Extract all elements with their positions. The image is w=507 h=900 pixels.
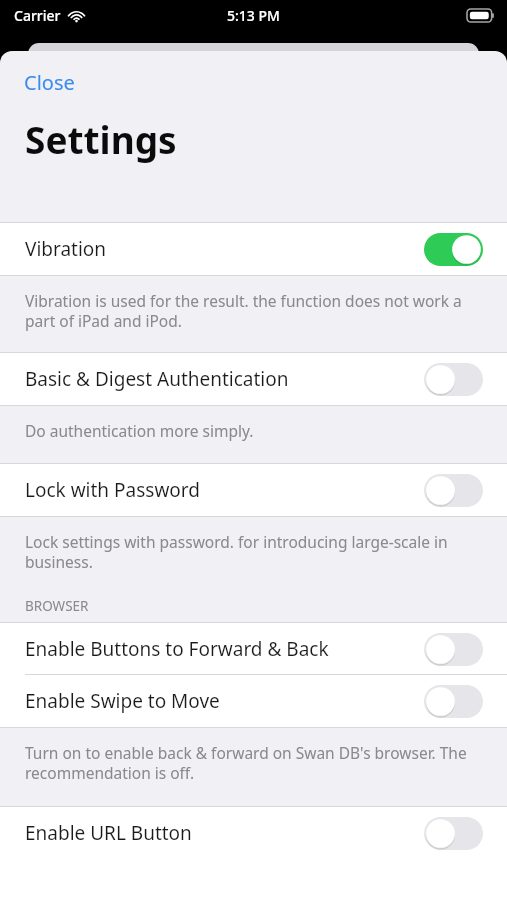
button[interactable]: Toggle off [424,817,483,850]
staticText: Settings [25,114,177,164]
staticText: Enable URL Button [25,820,192,846]
button[interactable]: Basic & Digest Authentication [0,353,507,405]
staticText: Turn on to enable back & forward on Swan… [25,742,479,784]
staticText: Lock settings with password. for introdu… [25,531,479,573]
button[interactable]: Toggle off [424,474,483,507]
staticText: Do authentication more simply. [25,420,254,441]
staticText: 5:13 PM [227,6,280,25]
button[interactable]: Enable URL Button [0,807,507,859]
button[interactable]: Close [12,63,87,102]
button[interactable]: Toggle off [424,685,483,718]
button[interactable]: Toggle off [424,633,483,666]
staticText: Vibration is used for the result. the fu… [25,290,479,332]
button[interactable]: Lock with Password [0,464,507,516]
button[interactable]: Vibration [0,223,507,275]
staticText: Vibration [25,236,107,262]
button[interactable]: Toggle off [424,363,483,396]
staticText: Close [24,69,75,96]
button[interactable]: Enable Buttons to Forward & Back [0,623,507,675]
staticText: Enable Buttons to Forward & Back [25,636,329,662]
staticText: BROWSER [25,597,89,615]
staticText: Lock with Password [25,477,200,503]
staticText: Carrier [14,6,61,25]
staticText: Basic & Digest Authentication [25,366,289,392]
button[interactable]: Toggle on [424,233,483,266]
button[interactable]: Enable Swipe to Move [0,675,507,727]
staticText: Enable Swipe to Move [25,688,220,714]
